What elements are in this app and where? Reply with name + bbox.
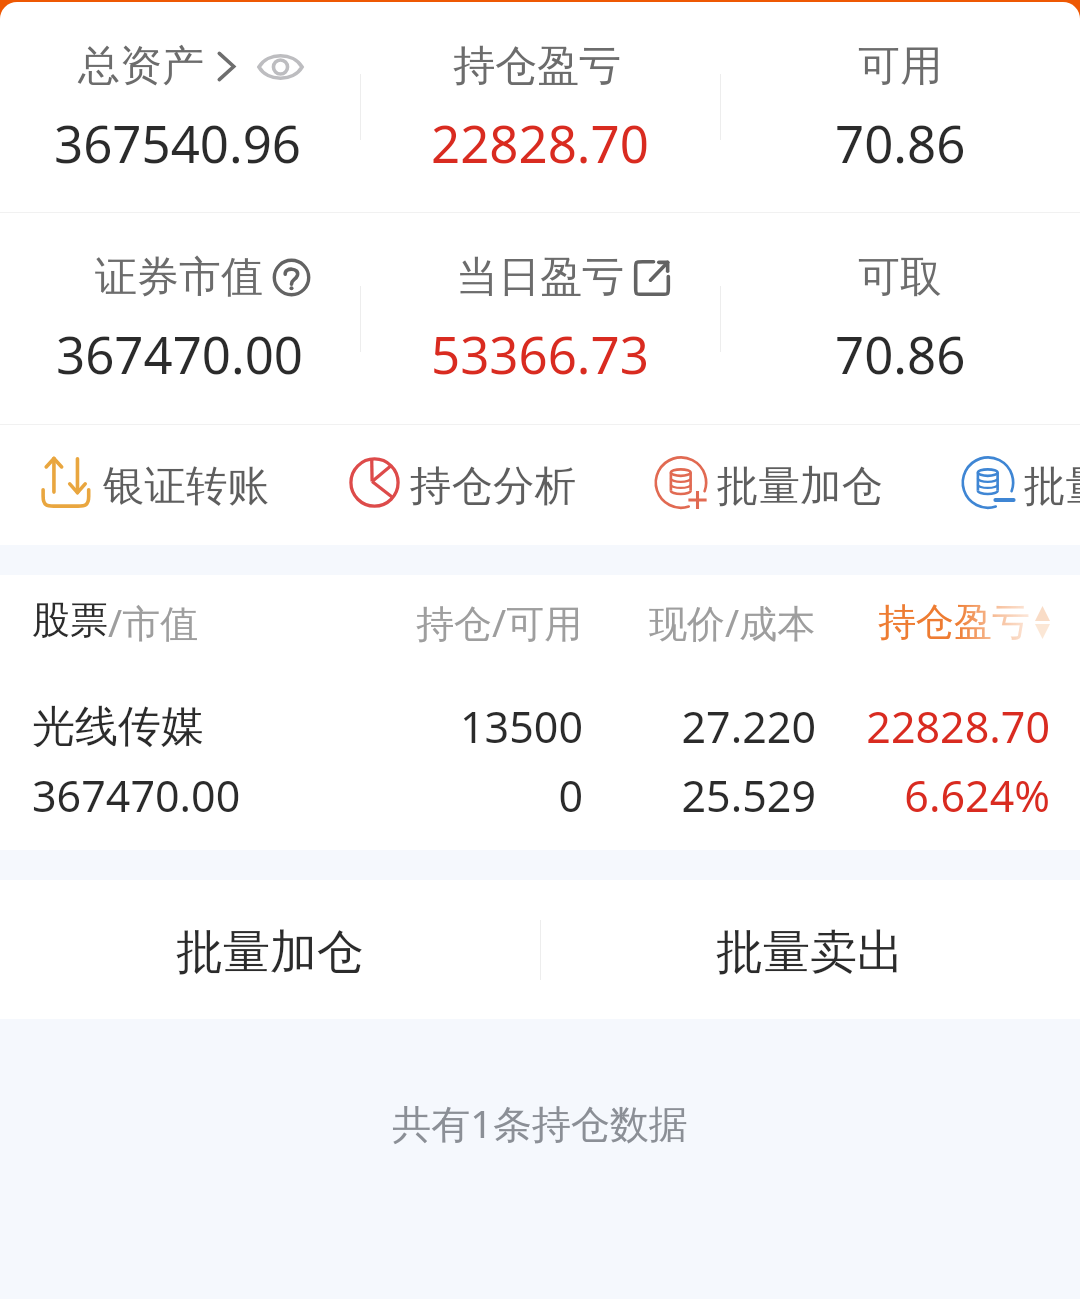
staticText: /市值 bbox=[108, 596, 199, 648]
staticText: 持仓/可用 bbox=[416, 596, 583, 648]
staticText: 6.624% bbox=[816, 766, 1050, 825]
button[interactable]: 批量加仓 bbox=[655, 459, 883, 512]
staticText: 批量加仓 bbox=[717, 460, 883, 512]
staticText: 光线传媒 bbox=[32, 700, 350, 754]
staticText: 持仓盈亏 bbox=[453, 40, 621, 93]
button[interactable]: 证券市值说明 bbox=[273, 259, 310, 296]
button[interactable]: 批量加仓 bbox=[0, 883, 540, 1022]
staticText: 批量卖出 bbox=[1024, 460, 1080, 512]
staticText: 可取 bbox=[858, 251, 942, 304]
button[interactable]: 批量卖出 bbox=[540, 883, 1080, 1022]
staticText: 13500 bbox=[350, 697, 583, 756]
button[interactable]: 当日盈亏详情 bbox=[635, 261, 669, 295]
staticText: 共有1条持仓数据 bbox=[0, 1096, 1080, 1149]
staticText: 当日盈亏 bbox=[456, 251, 624, 304]
staticText: 0 bbox=[350, 766, 583, 825]
staticText: 总资产 bbox=[78, 40, 204, 93]
button[interactable]: 银证转账 bbox=[41, 459, 269, 512]
staticText: 可用 bbox=[858, 40, 942, 93]
staticText: 27.220 bbox=[583, 697, 816, 756]
staticText: 25.529 bbox=[583, 766, 816, 825]
staticText: 银证转账 bbox=[103, 460, 269, 512]
staticText: 股票 bbox=[32, 596, 108, 644]
button[interactable]: 总资产 bbox=[78, 40, 236, 93]
staticText: 证券市值 bbox=[95, 251, 263, 304]
staticText: 367540.96 bbox=[54, 108, 302, 177]
staticText: 53366.73 bbox=[431, 319, 649, 388]
staticText: 22828.70 bbox=[816, 697, 1050, 756]
staticText: 367470.00 bbox=[56, 319, 304, 388]
staticText: 持仓盈亏 bbox=[878, 598, 1030, 646]
staticText: 22828.70 bbox=[431, 108, 649, 177]
staticText: 持仓分析 bbox=[410, 460, 576, 512]
staticText: 批量卖出 bbox=[716, 923, 904, 982]
button[interactable]: 持仓分析 bbox=[348, 459, 576, 512]
staticText: 70.86 bbox=[835, 108, 966, 177]
button[interactable]: 隐藏金额 bbox=[258, 52, 303, 82]
staticText: 批量加仓 bbox=[176, 923, 364, 982]
button[interactable]: 批量卖出 bbox=[962, 459, 1080, 512]
staticText: 现价/成本 bbox=[649, 596, 816, 648]
button[interactable]: 光线传媒 bbox=[0, 668, 1080, 850]
button[interactable]: 持仓盈亏 bbox=[878, 598, 1050, 646]
staticText: 70.86 bbox=[835, 319, 966, 388]
staticText: 367470.00 bbox=[32, 766, 350, 825]
